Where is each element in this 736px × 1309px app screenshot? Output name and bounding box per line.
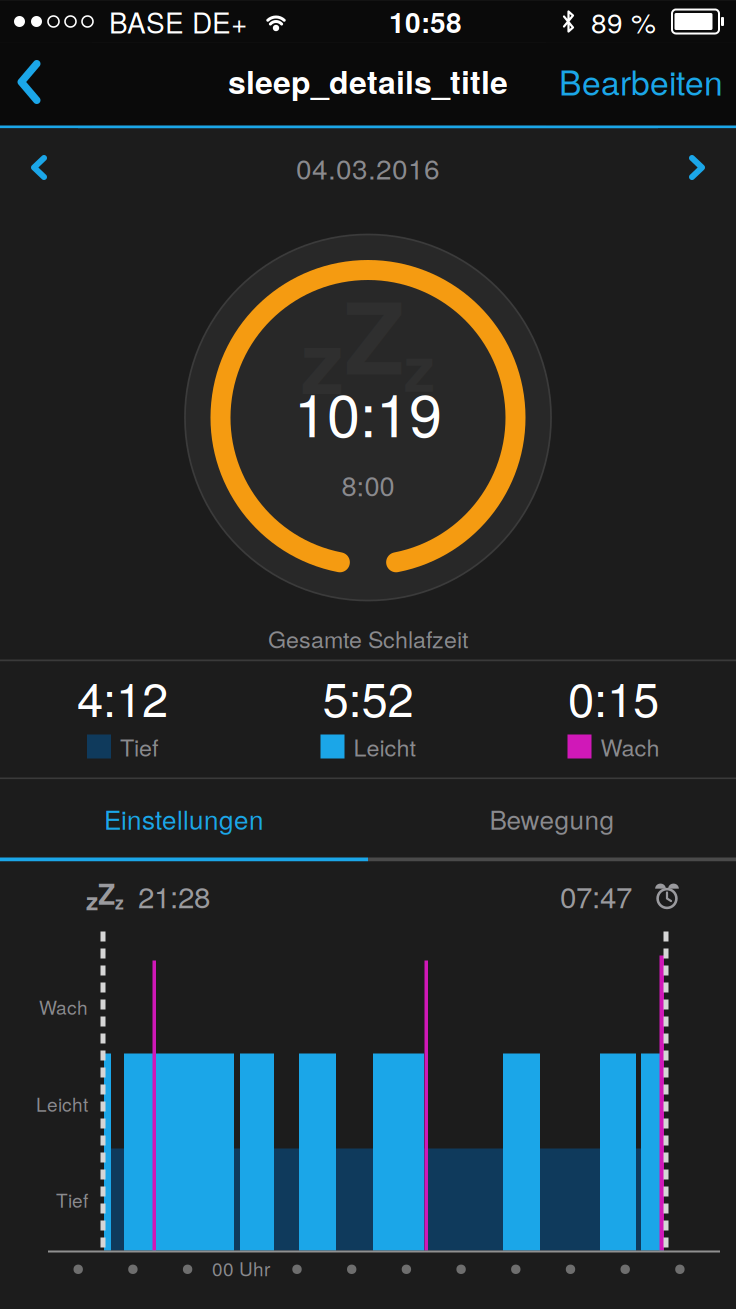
staticText: Bearbeiten (559, 57, 723, 105)
staticText: Wach (600, 730, 659, 763)
staticText: 4:12 (77, 663, 168, 730)
staticText: 5:52 (322, 663, 413, 730)
button[interactable]: Bearbeiten (546, 42, 736, 125)
staticText: 8:00 (341, 465, 394, 504)
button[interactable]: Einstellungen (0, 779, 368, 857)
staticText: Gesamte Schlafzeit (268, 621, 468, 655)
button[interactable]: Previous day (0, 128, 78, 206)
staticText: 0:15 (568, 663, 659, 730)
staticText: BASE DE+ (93, 1, 263, 42)
staticText: 00 Uhr (212, 1254, 270, 1282)
staticText: Z (344, 263, 404, 405)
staticText: Tief (56, 1186, 88, 1213)
staticText: 21:28 (138, 874, 210, 917)
staticText: Einstellungen (104, 800, 264, 837)
staticText: sleep_details_title (228, 58, 508, 104)
staticText: 07:47 (560, 874, 632, 917)
staticText: Tief (120, 730, 158, 763)
staticText: Leicht (36, 1090, 88, 1117)
staticText: Bewegung (489, 800, 614, 837)
staticText: 89 % (575, 1, 672, 42)
staticText: Z (98, 873, 115, 913)
button[interactable]: Back (0, 42, 92, 125)
button[interactable]: Bewegung (368, 779, 736, 857)
staticText: z (404, 322, 435, 410)
staticText: Wach (39, 993, 88, 1020)
staticText: Leicht (353, 730, 415, 763)
staticText: 10:58 (389, 1, 462, 42)
staticText: 04.03.2016 (296, 147, 440, 188)
staticText: z (115, 890, 124, 915)
staticText: z (301, 297, 344, 420)
staticText: 10:19 (294, 369, 442, 454)
button[interactable]: Next day (658, 128, 736, 206)
staticText: z (86, 883, 98, 918)
